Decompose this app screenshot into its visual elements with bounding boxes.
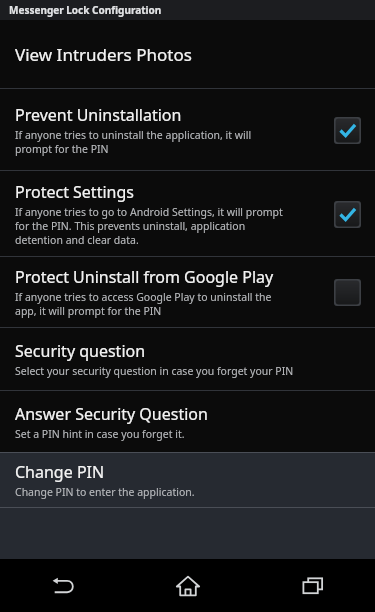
button[interactable]: Security question (0, 328, 375, 390)
staticText: Protect Settings (15, 181, 134, 203)
staticText: Security question (15, 340, 146, 362)
staticText: Select your security question in case yo… (15, 364, 294, 378)
staticText: Protect Uninstall from Google Play (15, 266, 274, 288)
staticText: View Intruders Photos (15, 43, 192, 66)
staticText: Answer Security Question (15, 403, 208, 425)
button[interactable]: Change PIN (0, 453, 375, 507)
button[interactable]: Protect Uninstall from Google Play (0, 257, 375, 327)
button[interactable]: Back (0, 559, 125, 612)
staticText: Change PIN (15, 461, 105, 483)
staticText: If anyone tries to uninstall the applica… (15, 128, 252, 156)
button[interactable]: Prevent Uninstallation (0, 89, 375, 170)
staticText: Set a PIN hint in case you forget it. (15, 427, 185, 441)
button[interactable]: Answer Security Question (0, 391, 375, 452)
button[interactable]: Home (125, 559, 250, 612)
button[interactable]: Recent apps (250, 559, 375, 612)
button[interactable]: Unchecked (332, 277, 362, 307)
staticText: Messenger Lock Configuration (9, 3, 162, 17)
staticText: Change PIN to enter the application. (15, 485, 195, 499)
staticText: If anyone tries to go to Android Setting… (15, 205, 283, 247)
button[interactable]: Checked (332, 115, 362, 145)
button[interactable]: View Intruders Photos (0, 20, 375, 88)
staticText: If anyone tries to access Google Play to… (15, 290, 272, 318)
button[interactable]: Protect Settings (0, 171, 375, 256)
button[interactable]: Checked (332, 199, 362, 229)
staticText: Prevent Uninstallation (15, 104, 182, 126)
